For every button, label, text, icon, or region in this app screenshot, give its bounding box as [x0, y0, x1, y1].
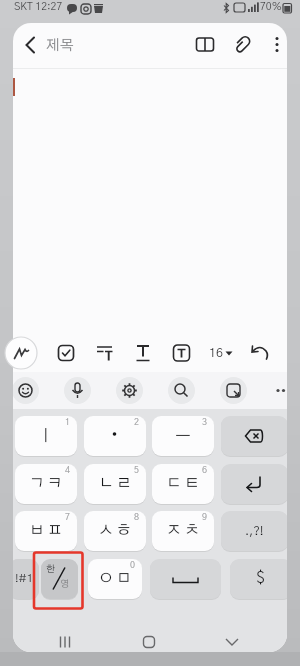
button[interactable]: ㅇㅁ: [88, 559, 142, 599]
staticText: $: [256, 571, 266, 587]
button[interactable]: [126, 337, 158, 369]
button[interactable]: [189, 29, 221, 61]
staticText: ㄴㄹ: [97, 476, 133, 492]
button[interactable]: ㅅㅎ: [84, 511, 146, 551]
staticText: ㄱㅋ: [28, 476, 64, 492]
button[interactable]: [116, 377, 143, 404]
button[interactable]: [212, 629, 252, 652]
staticText: 8: [134, 513, 140, 522]
button[interactable]: .,?!: [221, 511, 287, 551]
button[interactable]: ㄷㅌ: [152, 464, 214, 504]
staticText: ㅇㅁ: [97, 571, 133, 587]
button[interactable]: ㅂㅍ: [15, 511, 77, 551]
staticText: 4: [65, 466, 71, 475]
button[interactable]: [129, 629, 169, 652]
button[interactable]: [150, 559, 221, 599]
staticText: 6: [202, 466, 208, 475]
button[interactable]: [50, 337, 82, 369]
button[interactable]: [88, 337, 120, 369]
button[interactable]: !#1: [13, 559, 39, 599]
staticText: ㄷㅌ: [165, 476, 201, 492]
button[interactable]: [45, 629, 85, 652]
button[interactable]: [168, 377, 195, 404]
button[interactable]: [41, 559, 78, 599]
button[interactable]: [164, 337, 196, 369]
staticText: 영: [60, 579, 70, 589]
button[interactable]: [263, 29, 287, 61]
button[interactable]: [84, 416, 146, 456]
staticText: ㅅㅎ: [97, 523, 133, 539]
button[interactable]: ㄱㅋ: [15, 464, 77, 504]
button[interactable]: [226, 29, 258, 61]
button[interactable]: [13, 23, 61, 68]
button[interactable]: ㅈㅊ: [152, 511, 214, 551]
staticText: !#1: [15, 573, 34, 585]
button[interactable]: ㅡ: [152, 416, 214, 456]
staticText: 16: [209, 347, 223, 360]
staticText: ㅂㅍ: [28, 523, 64, 539]
staticText: 제목: [46, 38, 74, 53]
staticText: 7: [65, 513, 71, 522]
staticText: ㅈㅊ: [165, 523, 201, 539]
staticText: 한: [46, 564, 56, 574]
staticText: 3: [202, 418, 208, 427]
staticText: ㅡ: [175, 428, 191, 444]
staticText: 9: [202, 513, 208, 522]
button[interactable]: ㄴㄹ: [84, 464, 146, 504]
button[interactable]: [13, 377, 39, 404]
button[interactable]: [64, 377, 91, 404]
staticText: 2: [134, 418, 140, 427]
button[interactable]: ㅣ: [15, 416, 77, 456]
staticText: ㅣ: [38, 428, 54, 444]
button[interactable]: [5, 337, 37, 369]
staticText: 0: [130, 561, 136, 570]
button[interactable]: $: [230, 559, 287, 599]
staticText: SKT 12:27: [14, 2, 63, 13]
button[interactable]: [221, 464, 287, 504]
staticText: 1: [65, 418, 71, 427]
button[interactable]: [202, 337, 234, 369]
button[interactable]: [221, 416, 287, 456]
staticText: 70%: [260, 2, 282, 13]
button[interactable]: [271, 377, 287, 404]
button[interactable]: [240, 337, 272, 369]
button[interactable]: [220, 377, 247, 404]
staticText: 5: [134, 466, 140, 475]
staticText: .,?!: [245, 525, 264, 537]
